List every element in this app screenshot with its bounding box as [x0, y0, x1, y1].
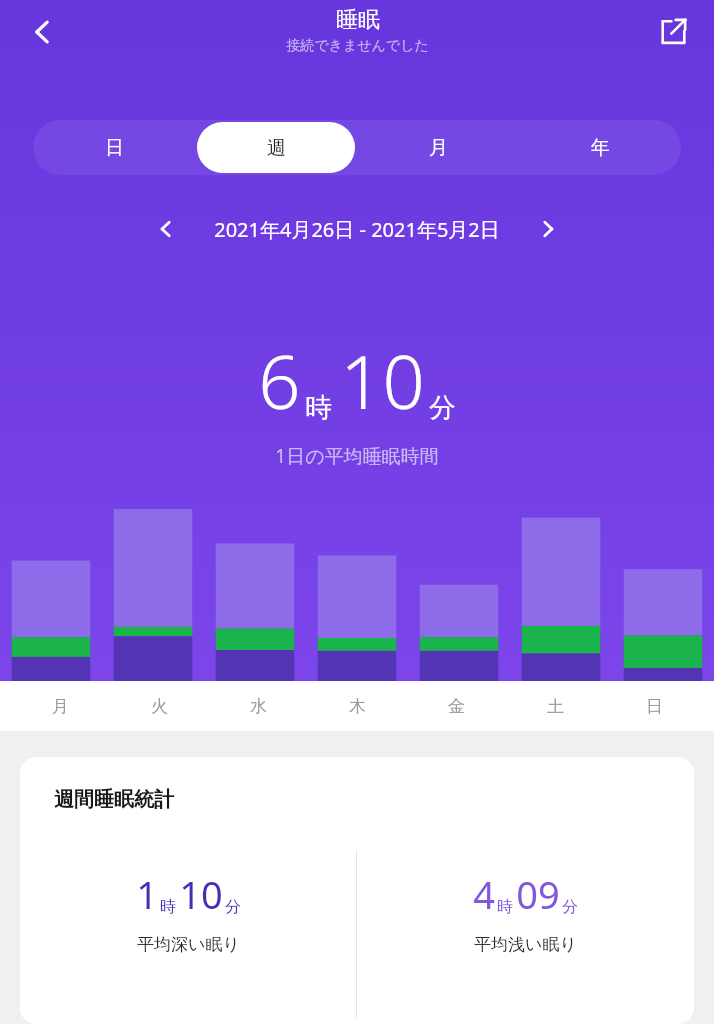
- staticText: 時: [160, 897, 176, 917]
- staticText: 2021年4月26日 - 2021年5月2日: [214, 216, 500, 243]
- staticText: 1日の平均睡眠時間: [275, 443, 439, 469]
- button[interactable]: Previous week: [144, 208, 188, 250]
- button[interactable]: 週: [197, 122, 355, 173]
- staticText: 週間睡眠統計: [54, 787, 174, 812]
- staticText: 睡眠: [336, 6, 380, 34]
- staticText: 年: [591, 136, 610, 160]
- staticText: 1: [136, 868, 158, 920]
- staticText: 分: [225, 897, 241, 917]
- staticText: 火: [151, 696, 168, 717]
- staticText: 10: [179, 868, 223, 920]
- button[interactable]: 週間睡眠統計: [20, 757, 694, 1024]
- staticText: 平均深い眠り: [137, 934, 240, 955]
- button[interactable]: 年: [521, 122, 679, 173]
- button[interactable]: 月: [359, 122, 517, 173]
- staticText: 日: [105, 136, 124, 160]
- staticText: 分: [429, 391, 456, 425]
- staticText: 時: [305, 391, 332, 425]
- button[interactable]: Back: [14, 4, 70, 60]
- staticText: 月: [429, 136, 448, 160]
- staticText: 6: [258, 330, 301, 431]
- button[interactable]: 日: [35, 122, 193, 173]
- staticText: 水: [250, 696, 267, 717]
- staticText: 金: [448, 696, 465, 717]
- staticText: 10: [340, 330, 425, 431]
- staticText: 平均浅い眠り: [474, 934, 577, 955]
- staticText: 日: [646, 696, 663, 717]
- button[interactable]: Share: [646, 4, 700, 58]
- staticText: 4: [473, 868, 495, 920]
- staticText: 土: [547, 696, 564, 717]
- staticText: 時: [497, 897, 513, 917]
- staticText: 週: [267, 136, 286, 160]
- staticText: 接続できませんでした: [286, 37, 429, 55]
- staticText: 分: [562, 897, 578, 917]
- staticText: 月: [52, 696, 69, 717]
- staticText: 木: [349, 696, 366, 717]
- button[interactable]: Next week: [526, 208, 570, 250]
- staticText: 09: [516, 868, 560, 920]
